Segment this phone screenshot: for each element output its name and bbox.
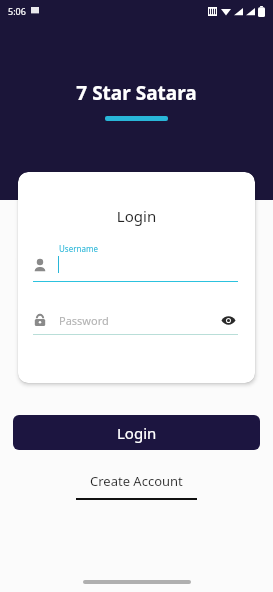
- staticText: 7 Star Satara: [76, 80, 197, 106]
- button[interactable]: Show password: [218, 310, 238, 330]
- staticText: Username: [59, 243, 98, 254]
- button[interactable]: Login: [13, 415, 260, 450]
- staticText: 5:06: [8, 5, 26, 17]
- staticText: Login: [18, 206, 255, 226]
- staticText: Password: [59, 313, 109, 328]
- button[interactable]: Username: [33, 243, 238, 285]
- staticText: Create Account: [90, 472, 183, 490]
- button[interactable]: Password: [33, 305, 238, 335]
- staticText: Login: [117, 423, 157, 443]
- button[interactable]: Create Account: [64, 470, 209, 502]
